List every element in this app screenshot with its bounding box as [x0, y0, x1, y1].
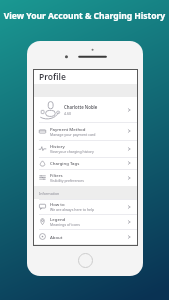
staticText: View Your Account & Charging History [0, 10, 169, 22]
staticText: Profile [39, 71, 66, 83]
staticText: Visibility preferences [50, 178, 84, 183]
staticText: Manage your payment card [50, 132, 96, 137]
button[interactable]: How to [34, 199, 137, 214]
button[interactable]: Charlotte Noble [34, 97, 137, 122]
staticText: Filters [50, 172, 63, 178]
button[interactable]: About [34, 229, 137, 244]
staticText: How to [50, 201, 65, 207]
button[interactable]: Payment Method [34, 122, 137, 140]
button[interactable]: Legend [34, 214, 137, 229]
staticText: View your charging history [50, 149, 94, 154]
staticText: Meanings of icons [50, 222, 80, 227]
staticText: Payment Method [50, 126, 86, 132]
staticText: We are always here to help [50, 207, 95, 212]
staticText: Information [39, 191, 60, 196]
staticText: Legend [50, 216, 66, 222]
button[interactable]: Charging Tags [34, 157, 137, 169]
staticText: Charging Tags [50, 160, 80, 166]
button[interactable]: Filters [34, 169, 137, 186]
staticText: About [50, 234, 63, 240]
staticText: 4.60 [64, 111, 71, 116]
staticText: History [50, 143, 65, 149]
button[interactable]: History [34, 140, 137, 157]
staticText: Charlotte Noble [64, 104, 98, 110]
